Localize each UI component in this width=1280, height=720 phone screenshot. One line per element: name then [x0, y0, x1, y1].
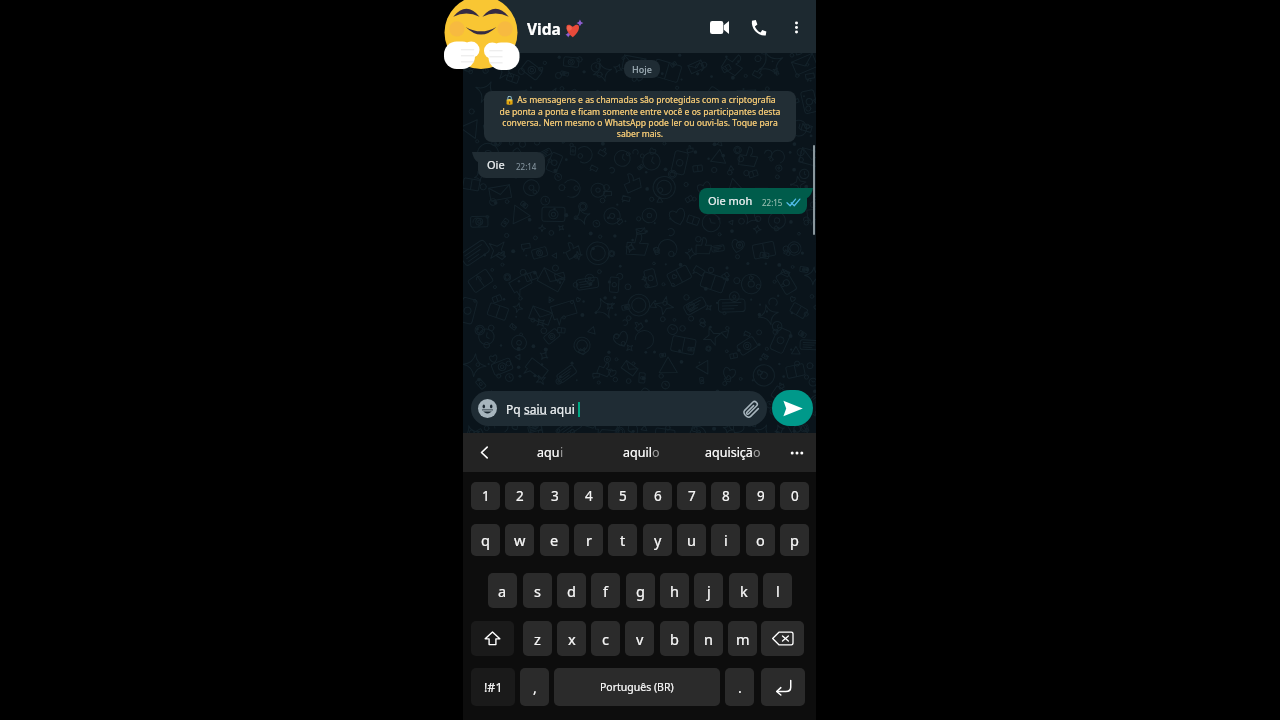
- staticText: i: [560, 444, 564, 461]
- button[interactable]: Attach: [737, 395, 765, 423]
- button[interactable]: aquisiçã: [687, 433, 778, 472]
- button[interactable]: f: [591, 573, 620, 608]
- button[interactable]: Back: [463, 433, 505, 472]
- staticText: p: [790, 530, 799, 550]
- button[interactable]: c: [591, 621, 620, 656]
- staticText: q: [481, 530, 490, 550]
- button[interactable]: x: [557, 621, 586, 656]
- button[interactable]: s: [523, 573, 552, 608]
- button[interactable]: Oie moh: [699, 188, 807, 214]
- staticText: 0: [791, 487, 799, 505]
- button[interactable]: 9: [746, 482, 775, 510]
- button[interactable]: Backspace: [761, 621, 804, 656]
- staticText: 2: [516, 487, 524, 505]
- button[interactable]: 2: [505, 482, 534, 510]
- staticText: aquisiçã: [705, 444, 753, 461]
- button[interactable]: w: [505, 524, 534, 556]
- button[interactable]: Video call: [700, 8, 738, 46]
- button[interactable]: Oie: [478, 152, 545, 178]
- button[interactable]: Vida: [527, 18, 583, 39]
- button[interactable]: r: [574, 524, 603, 556]
- button[interactable]: j: [694, 573, 723, 608]
- staticText: aquil: [623, 444, 652, 461]
- staticText: x: [568, 629, 576, 649]
- button[interactable]: v: [625, 621, 654, 656]
- button[interactable]: 6: [643, 482, 672, 510]
- staticText: 22:14: [516, 161, 537, 172]
- button[interactable]: Português (BR): [554, 668, 720, 706]
- button[interactable]: t: [608, 524, 637, 556]
- button[interactable]: i: [711, 524, 740, 556]
- staticText: o: [753, 444, 761, 461]
- staticText: w: [514, 530, 526, 550]
- staticText: g: [636, 581, 645, 601]
- button[interactable]: 0: [780, 482, 809, 510]
- button[interactable]: 7: [677, 482, 706, 510]
- staticText: 5: [619, 487, 627, 505]
- staticText: 4: [585, 487, 593, 505]
- button[interactable]: n: [694, 621, 723, 656]
- staticText: ,: [533, 678, 537, 697]
- staticText: Hoje: [632, 63, 652, 75]
- button[interactable]: 5: [608, 482, 637, 510]
- staticText: j: [707, 581, 711, 601]
- staticText: 6: [654, 487, 662, 505]
- staticText: 3: [551, 487, 559, 505]
- button[interactable]: .: [725, 668, 754, 706]
- staticText: f: [603, 581, 608, 601]
- staticText: Oie: [487, 157, 505, 172]
- button[interactable]: d: [557, 573, 586, 608]
- staticText: v: [636, 629, 644, 649]
- button[interactable]: Shift: [471, 621, 514, 656]
- staticText: Vida: [527, 18, 561, 39]
- staticText: k: [740, 581, 748, 601]
- staticText: saiu: [524, 401, 547, 417]
- button[interactable]: Voice call: [742, 10, 776, 44]
- button[interactable]: z: [523, 621, 552, 656]
- button[interactable]: p: [780, 524, 809, 556]
- button[interactable]: g: [626, 573, 655, 608]
- staticText: t: [620, 530, 626, 550]
- staticText: .: [738, 678, 742, 697]
- button[interactable]: Pq: [471, 391, 767, 426]
- staticText: h: [670, 581, 679, 601]
- button[interactable]: h: [660, 573, 689, 608]
- staticText: a: [498, 581, 507, 601]
- staticText: m: [736, 629, 750, 649]
- button[interactable]: m: [728, 621, 757, 656]
- button[interactable]: e: [540, 524, 569, 556]
- staticText: l: [776, 581, 780, 601]
- button[interactable]: More suggestions: [778, 433, 816, 472]
- staticText: c: [602, 629, 609, 649]
- staticText: y: [654, 530, 662, 550]
- staticText: Português (BR): [600, 680, 674, 694]
- button[interactable]: More options: [780, 11, 812, 43]
- button[interactable]: l: [763, 573, 792, 608]
- button[interactable]: a: [488, 573, 517, 608]
- staticText: i: [724, 530, 728, 550]
- staticText: d: [567, 581, 576, 601]
- button[interactable]: k: [729, 573, 758, 608]
- button[interactable]: !#1: [471, 668, 515, 706]
- button[interactable]: ,: [520, 668, 549, 706]
- staticText: 1: [482, 487, 490, 505]
- staticText: o: [652, 444, 660, 461]
- button[interactable]: 3: [540, 482, 569, 510]
- button[interactable]: aquil: [596, 433, 687, 472]
- button[interactable]: Enter: [761, 668, 805, 706]
- staticText: s: [534, 581, 541, 601]
- button[interactable]: 8: [711, 482, 740, 510]
- button[interactable]: q: [471, 524, 500, 556]
- button[interactable]: 🔒 As mensagens e as chamadas são protegi…: [484, 91, 796, 142]
- button[interactable]: 1: [471, 482, 500, 510]
- button[interactable]: b: [660, 621, 689, 656]
- button[interactable]: Send: [772, 390, 813, 426]
- button[interactable]: y: [643, 524, 672, 556]
- button[interactable]: 4: [574, 482, 603, 510]
- staticText: 8: [722, 487, 730, 505]
- button[interactable]: u: [677, 524, 706, 556]
- button[interactable]: aqu: [505, 433, 596, 472]
- button[interactable]: Hoje: [624, 60, 660, 78]
- button[interactable]: o: [746, 524, 775, 556]
- staticText: z: [534, 629, 541, 649]
